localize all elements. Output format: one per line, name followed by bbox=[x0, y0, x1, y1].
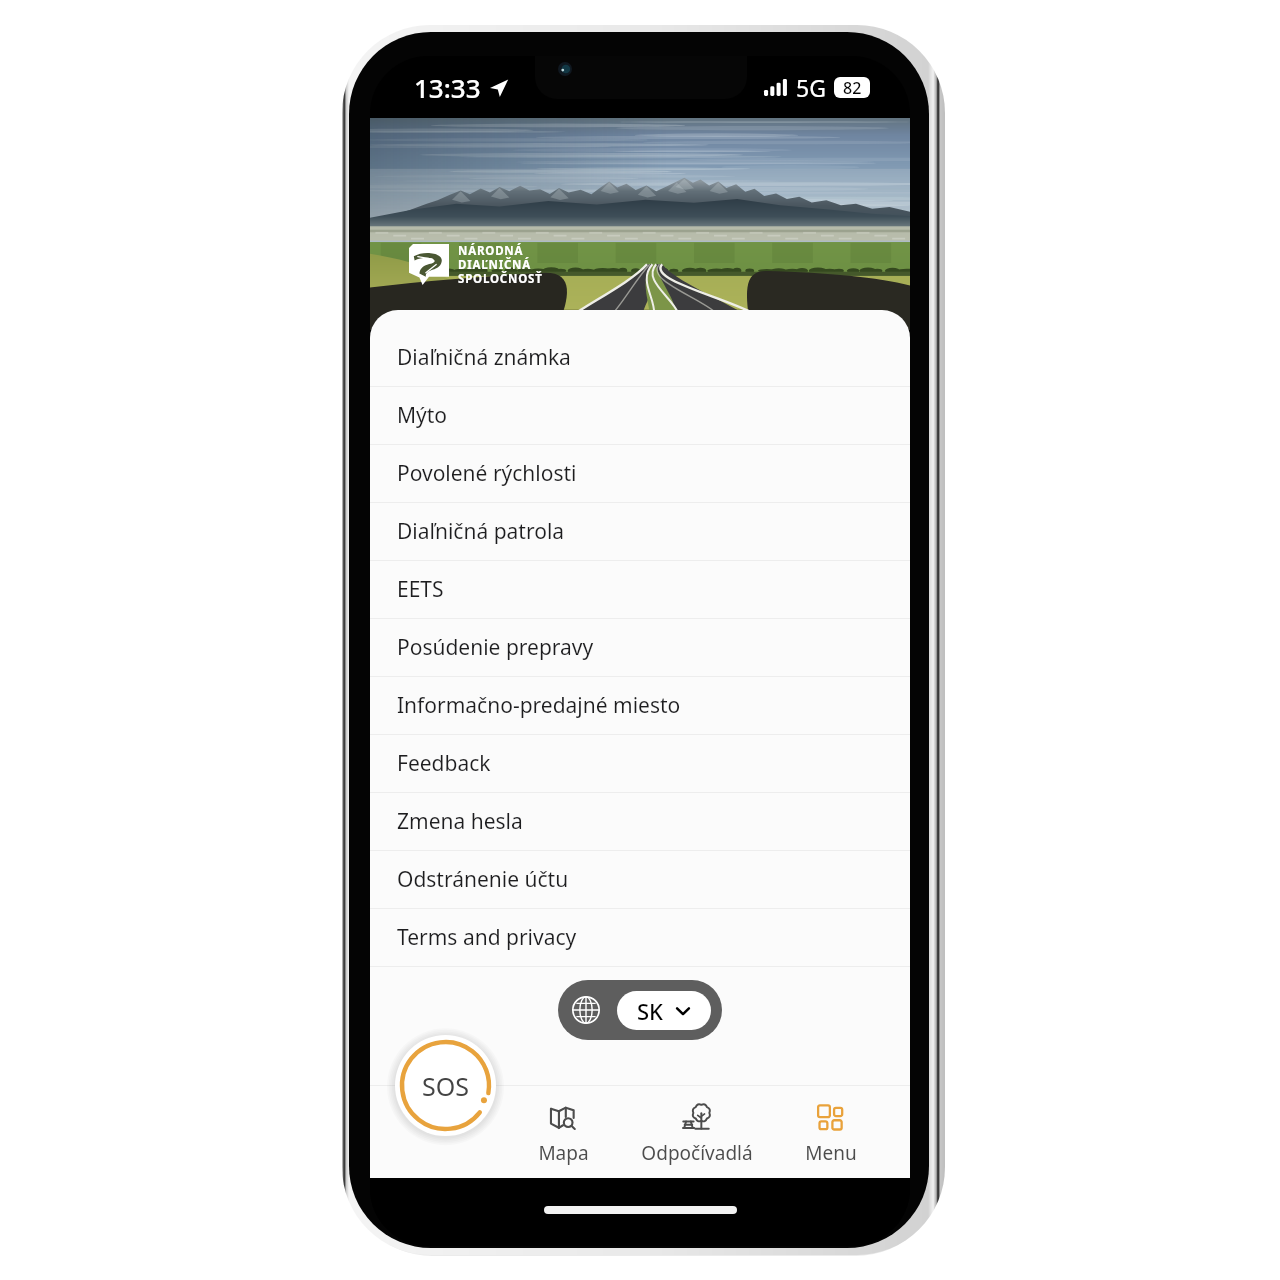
button[interactable]: Diaľničná známka bbox=[370, 329, 910, 387]
staticText: Mýto bbox=[397, 401, 448, 430]
staticText: EETS bbox=[397, 575, 444, 604]
staticText: Odpočívadlá bbox=[641, 1140, 753, 1166]
staticText: 5G bbox=[796, 72, 826, 103]
staticText: SPOLOČNOSŤ bbox=[458, 271, 543, 285]
staticText: Diaľničná známka bbox=[397, 343, 571, 372]
button[interactable]: Mapa bbox=[496, 1086, 630, 1178]
button[interactable]: Posúdenie prepravy bbox=[370, 619, 910, 677]
button[interactable]: Povolené rýchlosti bbox=[370, 445, 910, 503]
button[interactable]: SK bbox=[558, 980, 722, 1040]
staticText: Odstránenie účtu bbox=[397, 865, 569, 894]
staticText: SOS bbox=[422, 1069, 469, 1103]
staticText: Povolené rýchlosti bbox=[397, 459, 577, 488]
staticText: Feedback bbox=[397, 749, 491, 778]
staticText: Diaľničná patrola bbox=[397, 517, 565, 546]
staticText: Terms and privacy bbox=[397, 923, 577, 952]
button[interactable]: Odstránenie účtu bbox=[370, 851, 910, 909]
staticText: SK bbox=[637, 996, 664, 1026]
staticText: Mapa bbox=[538, 1140, 589, 1166]
staticText: 82 bbox=[843, 77, 862, 98]
button[interactable]: Mýto bbox=[370, 387, 910, 445]
staticText: Informačno-predajné miesto bbox=[397, 691, 681, 720]
staticText: 13:33 bbox=[414, 70, 481, 105]
staticText: NÁRODNÁ bbox=[458, 243, 524, 257]
staticText: Menu bbox=[805, 1140, 857, 1166]
button[interactable]: Menu bbox=[764, 1086, 898, 1178]
button[interactable]: Informačno-predajné miesto bbox=[370, 677, 910, 735]
staticText: DIAĽNIČNÁ bbox=[458, 257, 531, 271]
staticText: Posúdenie prepravy bbox=[397, 633, 594, 662]
button[interactable]: Feedback bbox=[370, 735, 910, 793]
button[interactable]: SOS emergency call bbox=[390, 1030, 501, 1141]
button[interactable]: Diaľničná patrola bbox=[370, 503, 910, 561]
staticText: Zmena hesla bbox=[397, 807, 523, 836]
button[interactable]: Terms and privacy bbox=[370, 909, 910, 967]
button[interactable]: EETS bbox=[370, 561, 910, 619]
button[interactable]: Zmena hesla bbox=[370, 793, 910, 851]
button[interactable]: Odpočívadlá bbox=[630, 1086, 764, 1178]
